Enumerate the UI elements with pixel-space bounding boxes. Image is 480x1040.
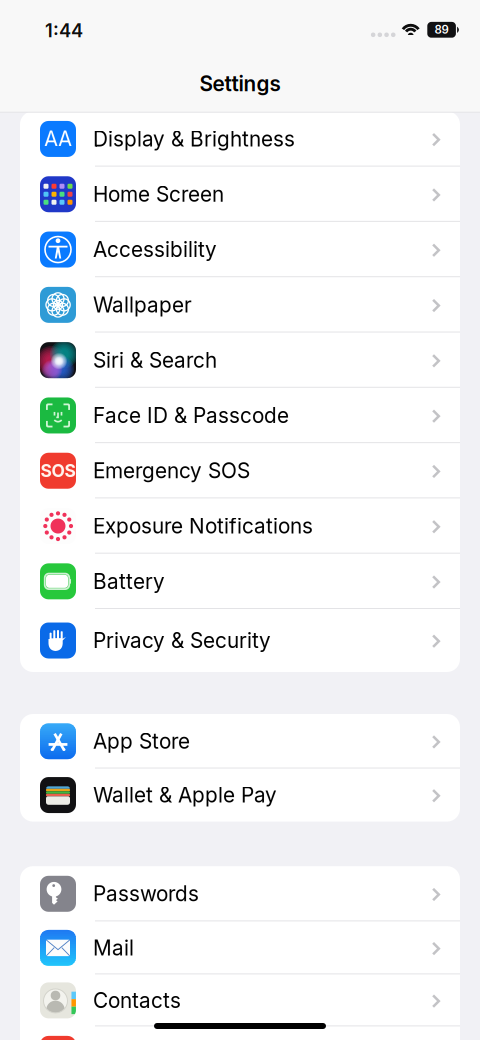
staticText: Mail <box>93 935 134 960</box>
staticText: Settings <box>199 71 280 96</box>
button[interactable]: SOS <box>20 443 460 498</box>
button[interactable]: Privacy & Security <box>20 609 460 672</box>
button[interactable]: Exposure Notifications <box>20 498 460 554</box>
staticText: Wallpaper <box>93 292 192 317</box>
button[interactable]: AA <box>20 111 460 167</box>
button[interactable]: Mail <box>20 921 460 974</box>
staticText: SOS <box>40 460 75 481</box>
button[interactable]: Wallet & Apple Pay <box>20 768 460 822</box>
staticText: Accessibility <box>93 237 217 262</box>
staticText: Privacy & Security <box>93 628 271 653</box>
button[interactable]: Home Screen <box>20 167 460 222</box>
staticText: Face ID & Passcode <box>93 403 289 428</box>
staticText: AA <box>44 126 72 151</box>
staticText: Wallet & Apple Pay <box>93 782 277 808</box>
staticText: 1:44 <box>45 19 83 42</box>
button[interactable]: Passwords <box>20 866 460 921</box>
button[interactable]: Siri & Search <box>20 332 460 388</box>
staticText: Battery <box>93 569 165 594</box>
button[interactable]: Face ID & Passcode <box>20 388 460 443</box>
button[interactable]: Battery <box>20 554 460 609</box>
button[interactable]: Accessibility <box>20 222 460 277</box>
button[interactable]: Contacts <box>20 974 460 1026</box>
staticText: Home Screen <box>93 182 224 207</box>
staticText: 89 <box>435 23 449 36</box>
staticText: Emergency SOS <box>93 458 250 483</box>
staticText: Siri & Search <box>93 348 217 373</box>
staticText: Contacts <box>93 988 181 1013</box>
button[interactable]: App Store <box>20 714 460 768</box>
staticText: App Store <box>93 729 190 754</box>
staticText: Display & Brightness <box>93 126 295 151</box>
staticText: Passwords <box>93 881 199 906</box>
staticText: Exposure Notifications <box>93 513 313 539</box>
button[interactable]: Calendar <box>20 1026 460 1040</box>
button[interactable]: Wallpaper <box>20 277 460 332</box>
